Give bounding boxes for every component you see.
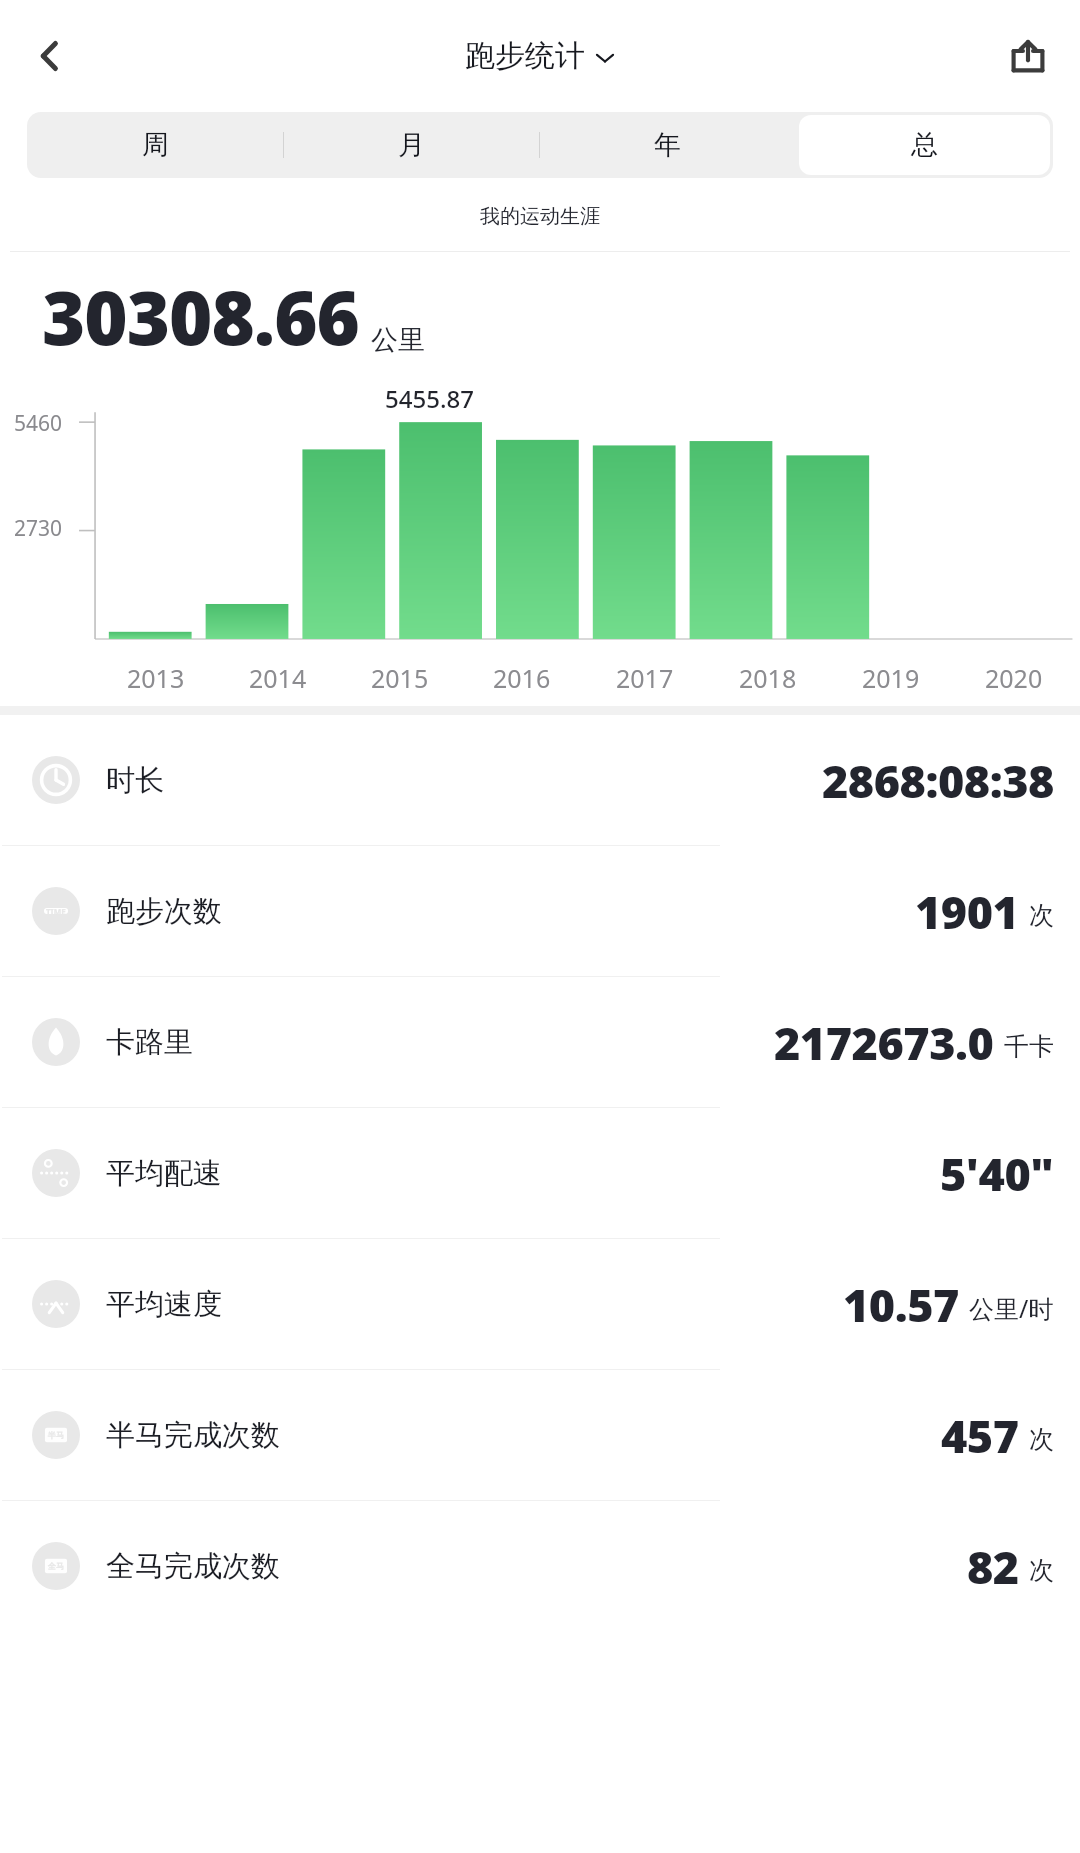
staticText: 82 <box>967 1536 1019 1597</box>
button[interactable]: 平均速度 <box>0 1239 1080 1369</box>
button[interactable]: Share <box>990 18 1066 94</box>
staticText: 年 <box>654 128 681 162</box>
staticText: 次 <box>1029 900 1054 931</box>
staticText: 跑步统计 <box>465 37 585 75</box>
button[interactable]: Back <box>10 16 90 96</box>
button[interactable]: 全马 <box>0 1501 1080 1631</box>
button[interactable]: 卡路里 <box>0 977 1080 1107</box>
button[interactable]: TIME <box>0 846 1080 976</box>
staticText: 跑步次数 <box>106 893 222 930</box>
staticText: 全马 <box>48 1561 64 1571</box>
staticText: 次 <box>1029 1555 1054 1586</box>
staticText: 公里 <box>371 323 425 357</box>
button[interactable]: 平均配速 <box>0 1108 1080 1238</box>
staticText: 半马完成次数 <box>106 1417 280 1454</box>
staticText: 2868:08:38 <box>822 750 1054 811</box>
staticText: TIME <box>46 906 66 917</box>
button[interactable]: 总 <box>796 112 1053 178</box>
staticText: 10.57 <box>843 1274 959 1335</box>
staticText: 30308.66 <box>42 266 359 367</box>
staticText: 总 <box>911 128 938 162</box>
staticText: 2016 <box>493 661 551 695</box>
staticText: 2015 <box>371 661 429 695</box>
staticText: 周 <box>142 128 169 162</box>
button[interactable]: 跑步统计 <box>465 37 615 75</box>
button[interactable]: 周 <box>27 112 283 178</box>
staticText: 我的运动生涯 <box>0 204 1080 229</box>
staticText: 2730 <box>14 514 63 543</box>
staticText: 时长 <box>106 762 164 799</box>
staticText: 千卡 <box>1004 1031 1054 1062</box>
staticText: 2172673.0 <box>774 1012 994 1073</box>
staticText: 2017 <box>616 661 674 695</box>
button[interactable]: 时长 <box>0 715 1080 845</box>
staticText: 平均配速 <box>106 1155 222 1192</box>
staticText: 平均速度 <box>106 1286 222 1323</box>
staticText: 5'40" <box>940 1143 1054 1204</box>
staticText: 2013 <box>127 661 185 695</box>
staticText: 5460 <box>14 409 63 438</box>
staticText: 2018 <box>739 661 797 695</box>
staticText: 2014 <box>249 661 307 695</box>
staticText: 5455.87 <box>385 382 474 415</box>
staticText: 月 <box>398 128 425 162</box>
staticText: 全马完成次数 <box>106 1548 280 1585</box>
staticText: 半马 <box>48 1430 64 1440</box>
staticText: 2020 <box>985 661 1043 695</box>
button[interactable]: 年 <box>539 112 796 178</box>
staticText: 公里/时 <box>969 1291 1054 1325</box>
staticText: 2019 <box>862 661 920 695</box>
staticText: 卡路里 <box>106 1024 193 1061</box>
staticText: 457 <box>941 1405 1019 1466</box>
button[interactable]: 半马 <box>0 1370 1080 1500</box>
staticText: 次 <box>1029 1424 1054 1455</box>
staticText: 1901 <box>915 881 1019 942</box>
button[interactable]: 月 <box>283 112 539 178</box>
